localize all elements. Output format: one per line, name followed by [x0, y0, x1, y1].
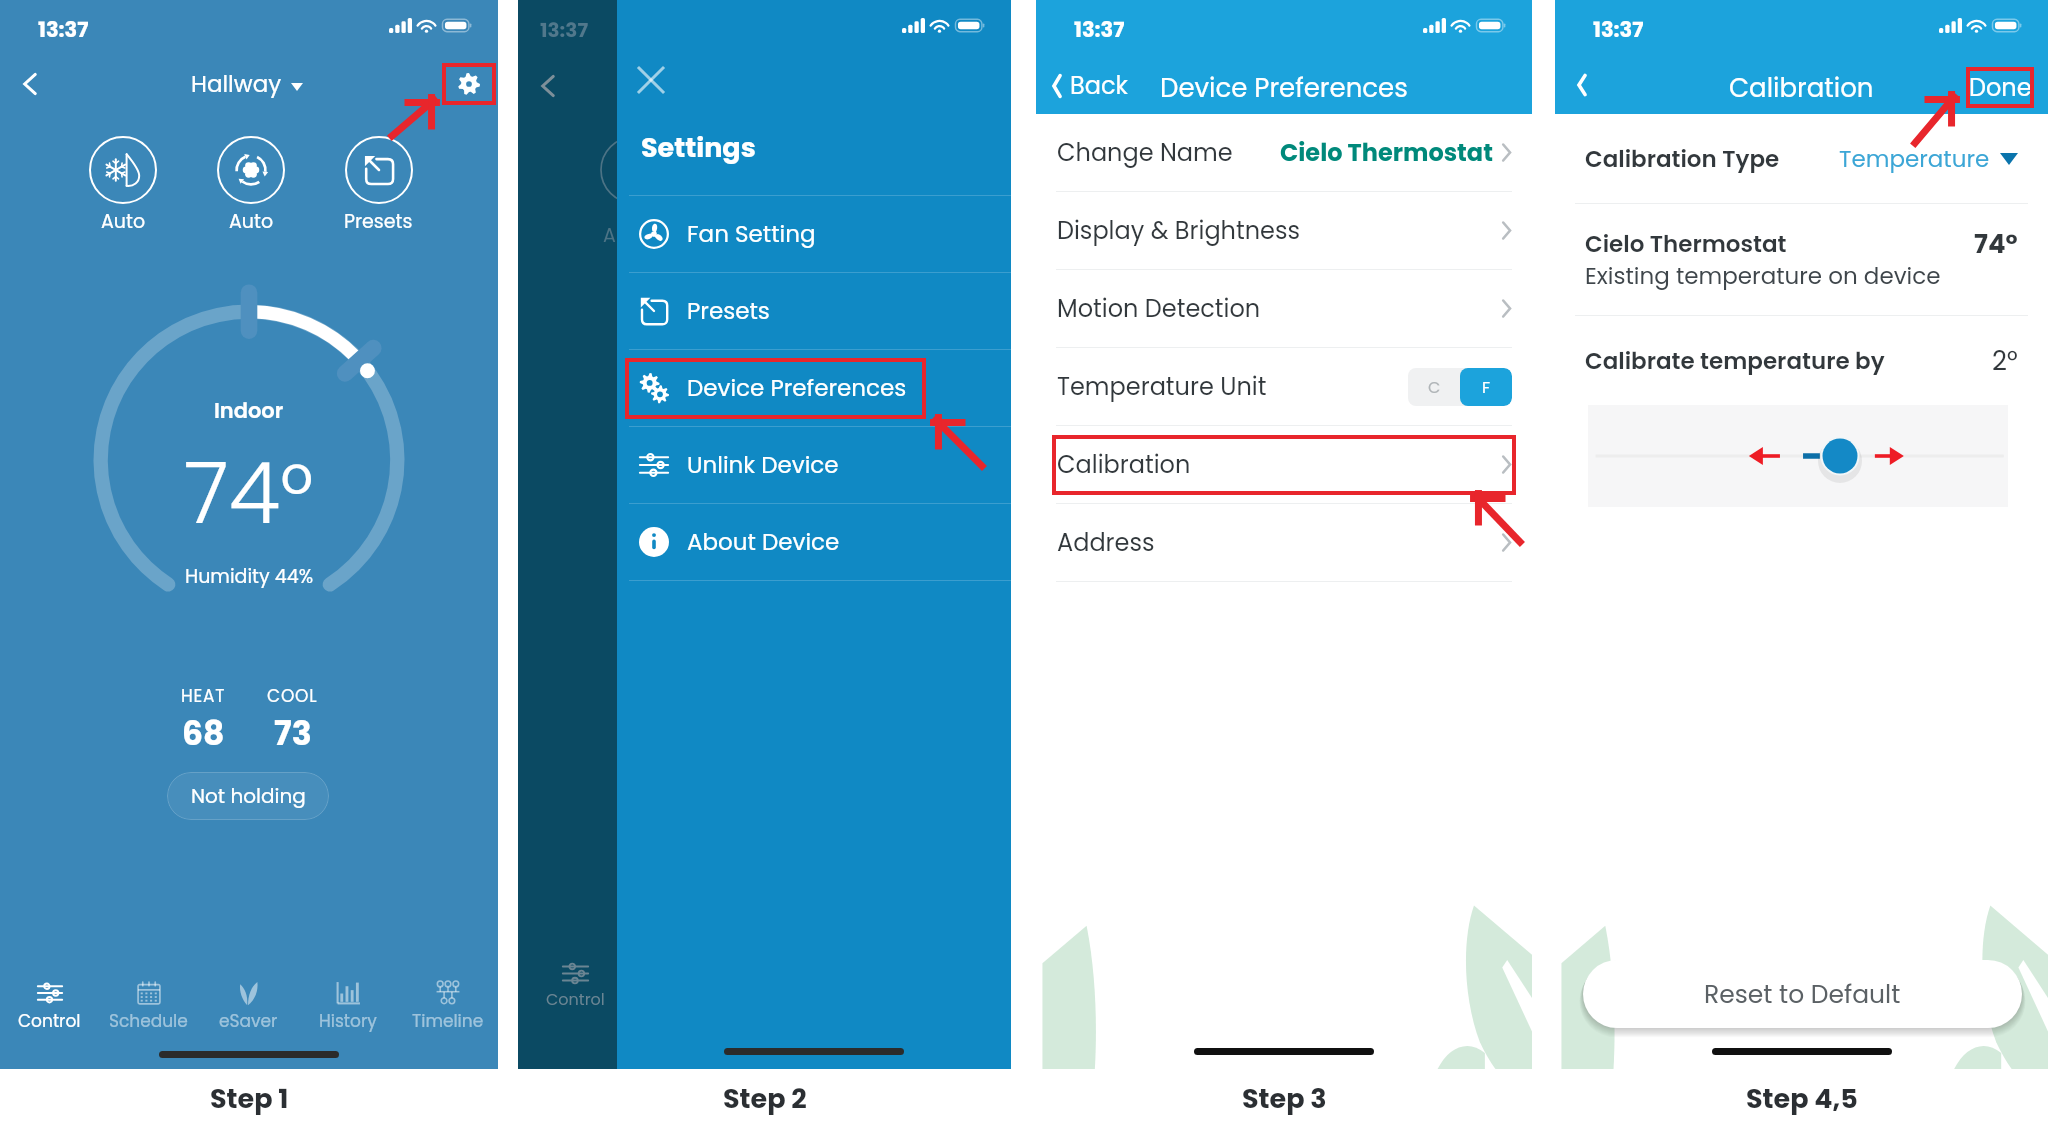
- button[interactable]: Schedule: [99, 978, 198, 1035]
- button[interactable]: Not holding: [167, 772, 329, 820]
- button[interactable]: Temperature Unit: [1036, 348, 1532, 425]
- button[interactable]: Back: [8, 62, 52, 106]
- staticText: HEAT: [181, 684, 226, 708]
- staticText: Timeline: [412, 1009, 484, 1033]
- staticText: Unlink Device: [687, 449, 839, 481]
- button[interactable]: Back: [1560, 63, 1604, 107]
- staticText: Step 1: [210, 1080, 289, 1118]
- button[interactable]: About Device: [617, 504, 1011, 580]
- staticText: Auto: [101, 208, 146, 235]
- staticText: eSaver: [219, 1009, 278, 1033]
- button[interactable]: Device Preferences: [617, 350, 1011, 426]
- staticText: Hallway: [191, 68, 282, 100]
- button[interactable]: Hallway: [191, 68, 303, 100]
- button[interactable]: Change Name: [1036, 114, 1532, 191]
- button[interactable]: Unlink Device: [617, 427, 1011, 503]
- button[interactable]: Control: [0, 978, 99, 1035]
- staticText: 68: [182, 710, 225, 756]
- staticText: 13:37: [540, 16, 589, 44]
- staticText: C: [1428, 376, 1441, 398]
- staticText: About Device: [687, 526, 840, 558]
- staticText: Step 3: [1242, 1080, 1327, 1118]
- button[interactable]: Reset to Default: [1583, 960, 2022, 1028]
- button[interactable]: Timeline: [398, 978, 498, 1035]
- staticText: Settings: [641, 129, 756, 167]
- staticText: Cielo Thermostat: [1585, 228, 1787, 260]
- staticText: Calibrate temperature by: [1585, 345, 1885, 377]
- button[interactable]: Presets: [344, 136, 413, 235]
- staticText: Temperature: [1839, 143, 1990, 175]
- staticText: Control: [18, 1009, 81, 1033]
- button[interactable]: Settings: [442, 63, 496, 105]
- staticText: A: [603, 222, 616, 249]
- button[interactable]: eSaver: [198, 978, 298, 1035]
- staticText: Calibration Type: [1585, 143, 1780, 175]
- staticText: Indoor: [214, 396, 284, 425]
- staticText: 13:37: [38, 15, 89, 44]
- button[interactable]: Back: [1045, 66, 1133, 106]
- staticText: Presets: [344, 208, 413, 235]
- staticText: 74°: [184, 435, 314, 553]
- button[interactable]: Fan Setting: [617, 196, 1011, 272]
- staticText: 2°: [1992, 343, 2018, 379]
- staticText: Cielo Thermostat: [1280, 136, 1493, 170]
- staticText: 74°: [1974, 226, 2018, 262]
- staticText: Calibration: [1729, 70, 1874, 106]
- button[interactable]: History: [298, 978, 398, 1035]
- button[interactable]: Auto: [217, 136, 285, 235]
- staticText: Step 4,5: [1746, 1080, 1858, 1118]
- staticText: F: [1482, 376, 1491, 398]
- staticText: Auto: [229, 208, 274, 235]
- button[interactable]: Motion Detection: [1036, 270, 1532, 347]
- staticText: Existing temperature on device: [1585, 260, 1941, 292]
- staticText: 13:37: [1074, 15, 1125, 44]
- button[interactable]: Close: [625, 54, 677, 106]
- staticText: Motion Detection: [1057, 292, 1261, 326]
- staticText: Control: [546, 988, 605, 1010]
- button[interactable]: F: [1460, 368, 1512, 406]
- staticText: History: [319, 1009, 377, 1033]
- staticText: Temperature Unit: [1057, 370, 1267, 404]
- button[interactable]: Presets: [617, 273, 1011, 349]
- button[interactable]: Done: [1966, 67, 2034, 108]
- staticText: Display & Brightness: [1057, 214, 1300, 248]
- staticText: Humidity 44%: [185, 563, 314, 590]
- button[interactable]: Calibration: [1036, 426, 1532, 503]
- staticText: COOL: [267, 684, 318, 708]
- button[interactable]: Address: [1036, 504, 1532, 581]
- staticText: Done: [1969, 71, 2032, 105]
- staticText: Change Name: [1057, 136, 1233, 170]
- staticText: Not holding: [191, 782, 306, 810]
- staticText: Device Preferences: [1160, 70, 1408, 106]
- staticText: Back: [1070, 69, 1128, 103]
- staticText: Reset to Default: [1704, 977, 1901, 1012]
- staticText: Calibration: [1057, 448, 1191, 482]
- button[interactable]: Calibration Type: [1555, 115, 2048, 203]
- staticText: 13:37: [1593, 15, 1644, 44]
- staticText: 73: [274, 710, 312, 756]
- button[interactable]: Display & Brightness: [1036, 192, 1532, 269]
- staticText: Presets: [687, 295, 770, 327]
- staticText: Device Preferences: [687, 372, 907, 404]
- staticText: Address: [1057, 526, 1155, 560]
- button[interactable]: C: [1408, 368, 1460, 406]
- staticText: Fan Setting: [687, 218, 816, 250]
- staticText: Step 2: [723, 1080, 807, 1118]
- button[interactable]: Auto: [89, 136, 157, 235]
- staticText: Schedule: [109, 1009, 188, 1033]
